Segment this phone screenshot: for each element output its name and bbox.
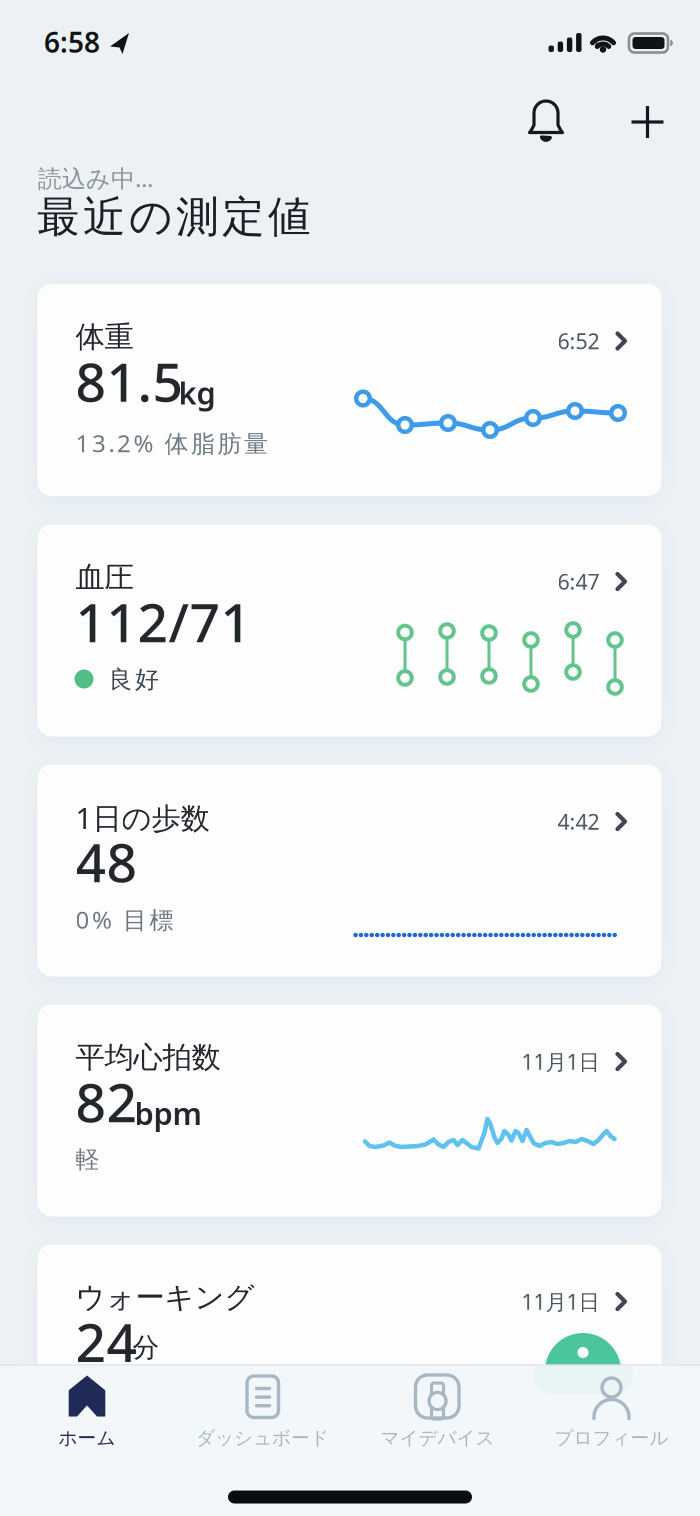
staticText: 良好 bbox=[108, 665, 159, 694]
staticText: 48 bbox=[75, 826, 137, 897]
staticText: ダッシュボード bbox=[196, 1426, 329, 1449]
button[interactable]: 血圧 bbox=[37, 524, 661, 736]
staticText: 112/71 bbox=[75, 586, 251, 657]
staticText: プロフィール bbox=[554, 1426, 668, 1449]
button[interactable]: 平均心拍数 bbox=[37, 1004, 661, 1216]
staticText: 分 bbox=[132, 1331, 159, 1364]
staticText: 平均心拍数 bbox=[75, 1039, 220, 1075]
button[interactable]: プロフィール bbox=[0, 0, 700, 1516]
staticText: 81.5 bbox=[75, 346, 183, 416]
staticText: 6:58 bbox=[44, 23, 100, 61]
button[interactable]: ダッシュボード bbox=[0, 0, 700, 1516]
staticText: ホーム bbox=[58, 1426, 115, 1449]
staticText: 24 bbox=[75, 1306, 137, 1377]
staticText: kg bbox=[178, 372, 215, 413]
staticText: 読込み中... bbox=[38, 162, 153, 194]
staticText: 4:42 bbox=[557, 807, 599, 836]
button[interactable]: マイデバイス bbox=[0, 0, 700, 1516]
button[interactable]: 1日の歩数 bbox=[37, 764, 661, 976]
staticText: 最近の測定値 bbox=[37, 191, 311, 243]
button[interactable]: ウォーキング bbox=[37, 1244, 661, 1456]
staticText: 血圧 bbox=[75, 559, 133, 595]
staticText: 11月1日 bbox=[521, 1047, 599, 1076]
staticText: 82 bbox=[75, 1066, 137, 1137]
staticText: 体重 bbox=[75, 319, 133, 355]
button[interactable]: ホーム bbox=[0, 0, 700, 1516]
staticText: 13.2% 体脂肪量 bbox=[75, 427, 268, 459]
staticText: マイデバイス bbox=[380, 1426, 494, 1449]
staticText: 0% 目標 bbox=[75, 904, 173, 935]
staticText: ウォーキング bbox=[75, 1279, 254, 1315]
staticText: bpm bbox=[134, 1093, 201, 1133]
button[interactable]: 体重 bbox=[37, 284, 661, 496]
staticText: 6:47 bbox=[557, 567, 599, 596]
staticText: 6:52 bbox=[557, 327, 599, 355]
button[interactable]: Notifications bbox=[0, 0, 700, 1516]
button[interactable]: Add bbox=[0, 0, 700, 1516]
staticText: 11月1日 bbox=[521, 1287, 599, 1316]
staticText: 1日の歩数 bbox=[75, 798, 209, 837]
staticText: 軽 bbox=[75, 1145, 99, 1174]
